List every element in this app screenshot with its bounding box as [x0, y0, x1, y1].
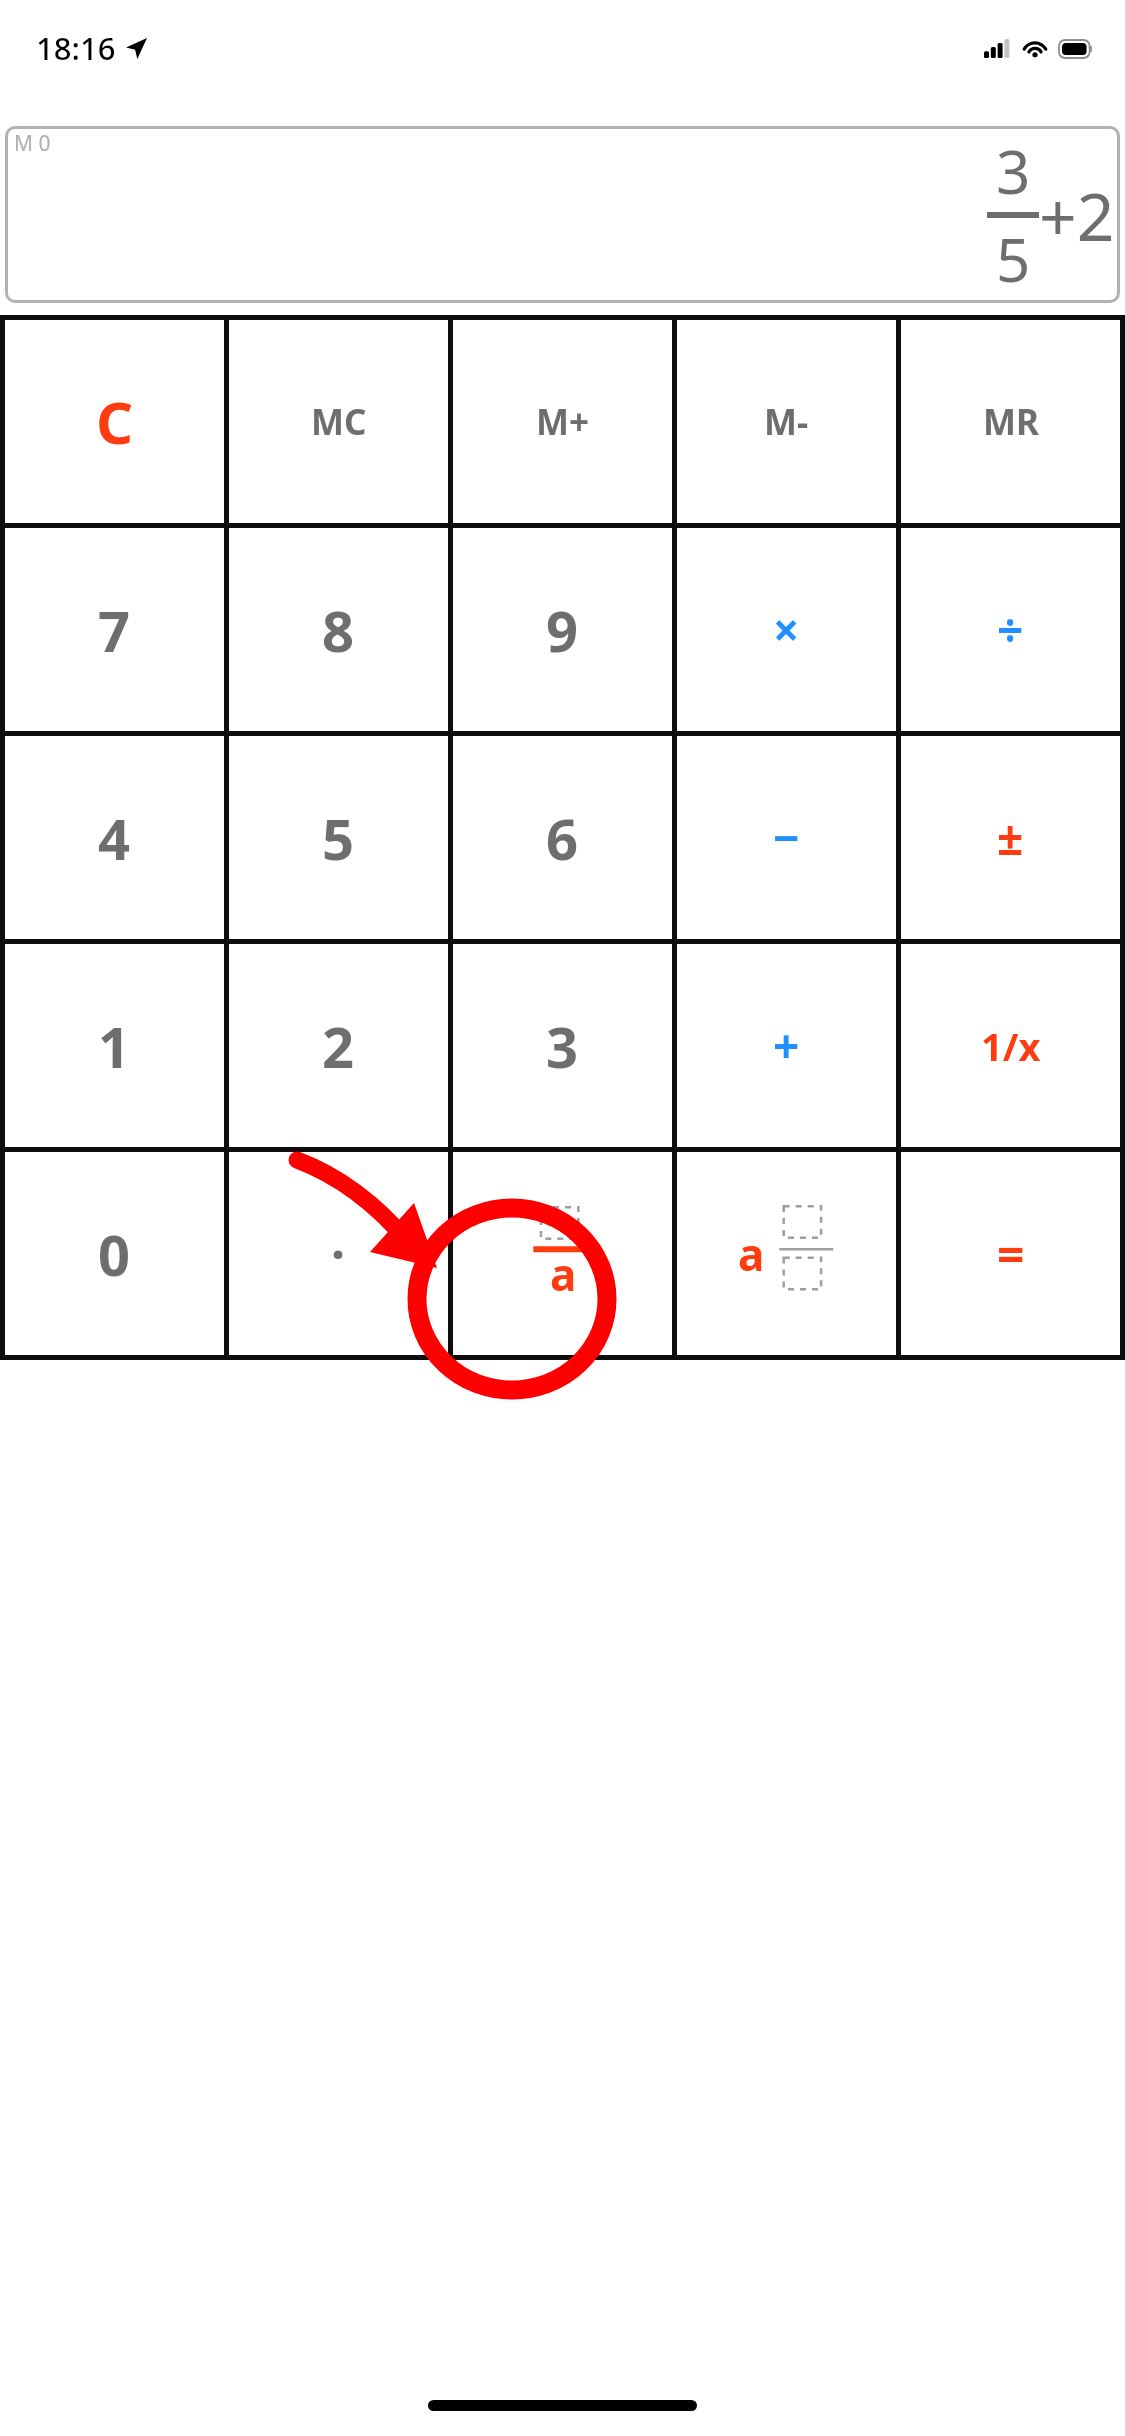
staticText: · — [331, 1220, 346, 1288]
button[interactable]: 1/x — [901, 944, 1120, 1147]
staticText: +2 — [1039, 170, 1115, 260]
staticText: 0 — [98, 1216, 131, 1292]
button[interactable]: × — [677, 528, 896, 731]
button[interactable]: ± — [901, 736, 1120, 939]
button[interactable]: MC — [229, 320, 448, 523]
button[interactable]: M- — [677, 320, 896, 523]
staticText: 18:16 — [36, 27, 116, 69]
staticText: a — [550, 1244, 577, 1304]
button[interactable]: Mixed number a and fraction — [677, 1152, 896, 1355]
button[interactable]: − — [677, 736, 896, 939]
button[interactable]: MR — [901, 320, 1120, 523]
staticText: ± — [997, 806, 1024, 869]
other: Mixed number a and fraction — [732, 1201, 842, 1306]
staticText: 5 — [322, 800, 355, 876]
staticText: 1/x — [981, 1020, 1041, 1072]
staticText: = — [997, 1221, 1025, 1286]
button[interactable]: 3 — [453, 944, 672, 1147]
button[interactable]: 2 — [229, 944, 448, 1147]
button[interactable]: 9 — [453, 528, 672, 731]
staticText: 5 — [996, 218, 1031, 300]
staticText: ÷ — [997, 598, 1024, 661]
staticText: 1 — [98, 1008, 131, 1084]
button[interactable]: 8 — [229, 528, 448, 731]
button[interactable]: ÷ — [901, 528, 1120, 731]
staticText: M+ — [536, 398, 590, 446]
button[interactable]: 5 — [229, 736, 448, 939]
button[interactable]: Fraction a over box — [453, 1152, 672, 1355]
staticText: × — [773, 598, 800, 661]
other: Fraction a over box — [508, 1201, 618, 1306]
staticText: MC — [311, 398, 367, 446]
button[interactable]: · — [229, 1152, 448, 1355]
staticText: 7 — [98, 592, 131, 668]
staticText: + — [773, 1014, 800, 1077]
button[interactable]: 7 — [5, 528, 224, 731]
button[interactable]: 0 — [5, 1152, 224, 1355]
staticText: C — [96, 382, 134, 461]
staticText: M- — [764, 398, 809, 446]
staticText: a — [738, 1224, 765, 1284]
staticText: 9 — [546, 592, 579, 668]
staticText: 6 — [546, 800, 579, 876]
button[interactable]: 1 — [5, 944, 224, 1147]
button[interactable]: 6 — [453, 736, 672, 939]
button[interactable]: + — [677, 944, 896, 1147]
staticText: 2 — [322, 1008, 355, 1084]
staticText: 4 — [98, 800, 131, 876]
staticText: M 0 — [14, 129, 51, 158]
staticText: 8 — [322, 592, 355, 668]
button[interactable]: C — [5, 320, 224, 523]
button[interactable]: 4 — [5, 736, 224, 939]
staticText: 3 — [546, 1008, 579, 1084]
staticText: − — [773, 806, 800, 869]
button[interactable]: = — [901, 1152, 1120, 1355]
staticText: 3 — [996, 130, 1031, 212]
staticText: MR — [983, 398, 1039, 446]
button[interactable]: M+ — [453, 320, 672, 523]
